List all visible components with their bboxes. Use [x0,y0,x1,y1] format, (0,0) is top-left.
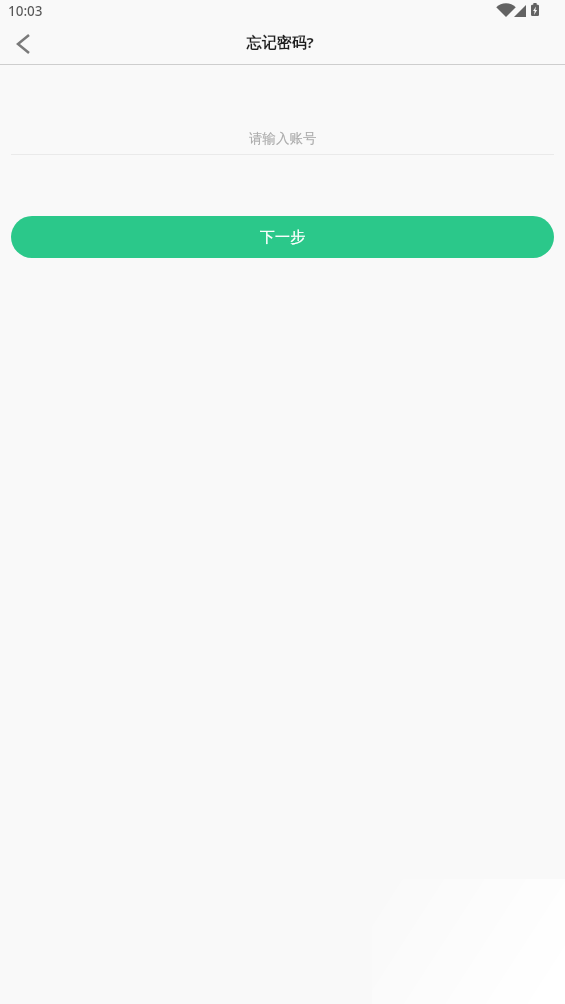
staticText: 10:03 [8,2,43,20]
button[interactable]: 下一步 [11,216,554,258]
staticText: 忘记密码? [246,32,314,52]
staticText: 下一步 [260,228,305,247]
button[interactable]: Back [2,24,44,64]
button[interactable]: 请输入账号 [11,110,554,155]
staticText: 请输入账号 [249,130,317,147]
